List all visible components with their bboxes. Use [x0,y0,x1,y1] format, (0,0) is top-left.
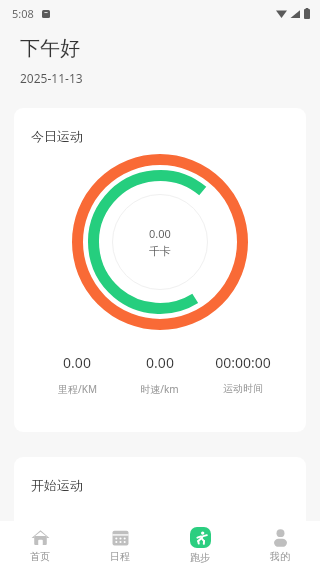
button[interactable]: 今日运动 [14,108,306,432]
button[interactable]: 开始运动 [14,457,306,547]
staticText: 千卡 [149,244,171,258]
staticText: 0.00 [146,353,174,372]
button[interactable]: 我的 [240,521,320,569]
button[interactable]: 跑步 [160,521,240,569]
staticText: 0.00 [63,353,91,372]
staticText: 首页 [30,550,50,563]
staticText: 开始运动 [31,477,83,493]
staticText: 0.00 [149,226,171,241]
button[interactable]: 首页 [0,521,80,569]
staticText: 日程 [110,550,130,563]
staticText: 今日运动 [31,128,83,144]
staticText: 我的 [270,550,290,563]
staticText: 2025-11-13 [20,70,83,86]
staticText: 5:08 [12,6,34,21]
staticText: 运动时间 [223,382,263,395]
staticText: 下午好 [20,36,80,61]
staticText: 时速/km [140,382,179,396]
staticText: 里程/KM [58,382,97,396]
staticText: 00:00:00 [215,353,271,372]
button[interactable]: 日程 [80,521,160,569]
staticText: 跑步 [190,551,210,564]
